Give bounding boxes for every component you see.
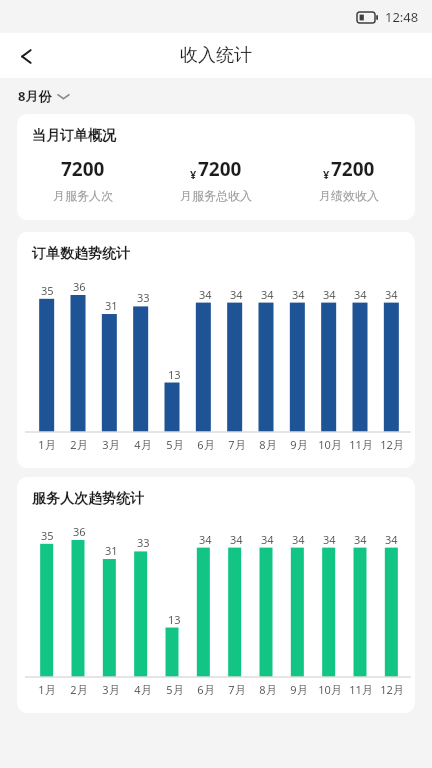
staticText: 31 [105, 298, 118, 313]
staticText: 34 [385, 532, 398, 547]
staticText: 服务人次趋势统计 [32, 490, 144, 508]
staticText: 34 [199, 287, 212, 302]
staticText: 9月 [290, 682, 308, 697]
staticText: 33 [137, 290, 150, 305]
staticText: 12月 [380, 682, 404, 697]
button[interactable]: ¥ [149, 156, 282, 203]
staticText: 34 [323, 287, 336, 302]
staticText: 5月 [166, 437, 184, 452]
button[interactable]: ¥ [282, 156, 415, 203]
staticText: 34 [385, 287, 398, 302]
staticText: 7200 [61, 156, 105, 182]
staticText: 8月 [259, 437, 277, 452]
button[interactable]: 8月份 [18, 87, 69, 105]
staticText: 11月 [349, 682, 373, 697]
staticText: 8月份 [18, 87, 52, 105]
staticText: 34 [199, 532, 212, 547]
staticText: 7200 [198, 156, 242, 182]
staticText: 10月 [318, 437, 342, 452]
staticText: 3月 [102, 437, 120, 452]
staticText: 34 [354, 287, 367, 302]
staticText: 13 [168, 367, 181, 382]
staticText: 收入统计 [180, 44, 252, 67]
staticText: 1月 [38, 437, 56, 452]
staticText: 月服务总收入 [180, 188, 252, 203]
staticText: 4月 [134, 682, 152, 697]
staticText: 34 [261, 287, 274, 302]
staticText: ¥ [190, 167, 197, 182]
staticText: 35 [41, 528, 54, 543]
staticText: 36 [73, 279, 86, 294]
staticText: 35 [41, 283, 54, 298]
staticText: 10月 [318, 682, 342, 697]
staticText: 34 [261, 532, 274, 547]
staticText: 2月 [70, 682, 88, 697]
staticText: 2月 [70, 437, 88, 452]
staticText: 当月订单概况 [32, 127, 116, 145]
staticText: 4月 [134, 437, 152, 452]
staticText: 36 [73, 524, 86, 539]
staticText: 34 [292, 287, 305, 302]
staticText: 11月 [349, 437, 373, 452]
staticText: 12月 [380, 437, 404, 452]
staticText: 34 [323, 532, 336, 547]
staticText: 13 [168, 612, 181, 627]
staticText: 订单数趋势统计 [32, 245, 130, 263]
staticText: 33 [137, 535, 150, 550]
staticText: 31 [105, 543, 118, 558]
button[interactable]: Back [6, 35, 48, 77]
staticText: 34 [292, 532, 305, 547]
staticText: 月服务人次 [53, 188, 113, 203]
staticText: 12:48 [385, 8, 419, 26]
staticText: 月绩效收入 [319, 188, 379, 203]
staticText: 8月 [259, 682, 277, 697]
staticText: 7200 [331, 156, 375, 182]
staticText: 1月 [38, 682, 56, 697]
staticText: 7月 [228, 437, 246, 452]
button[interactable]: 7200 [17, 156, 149, 203]
staticText: 34 [230, 287, 243, 302]
staticText: 6月 [197, 682, 215, 697]
staticText: 9月 [290, 437, 308, 452]
staticText: 3月 [102, 682, 120, 697]
staticText: 5月 [166, 682, 184, 697]
staticText: 34 [354, 532, 367, 547]
staticText: ¥ [323, 167, 330, 182]
staticText: 34 [230, 532, 243, 547]
staticText: 6月 [197, 437, 215, 452]
staticText: 7月 [228, 682, 246, 697]
